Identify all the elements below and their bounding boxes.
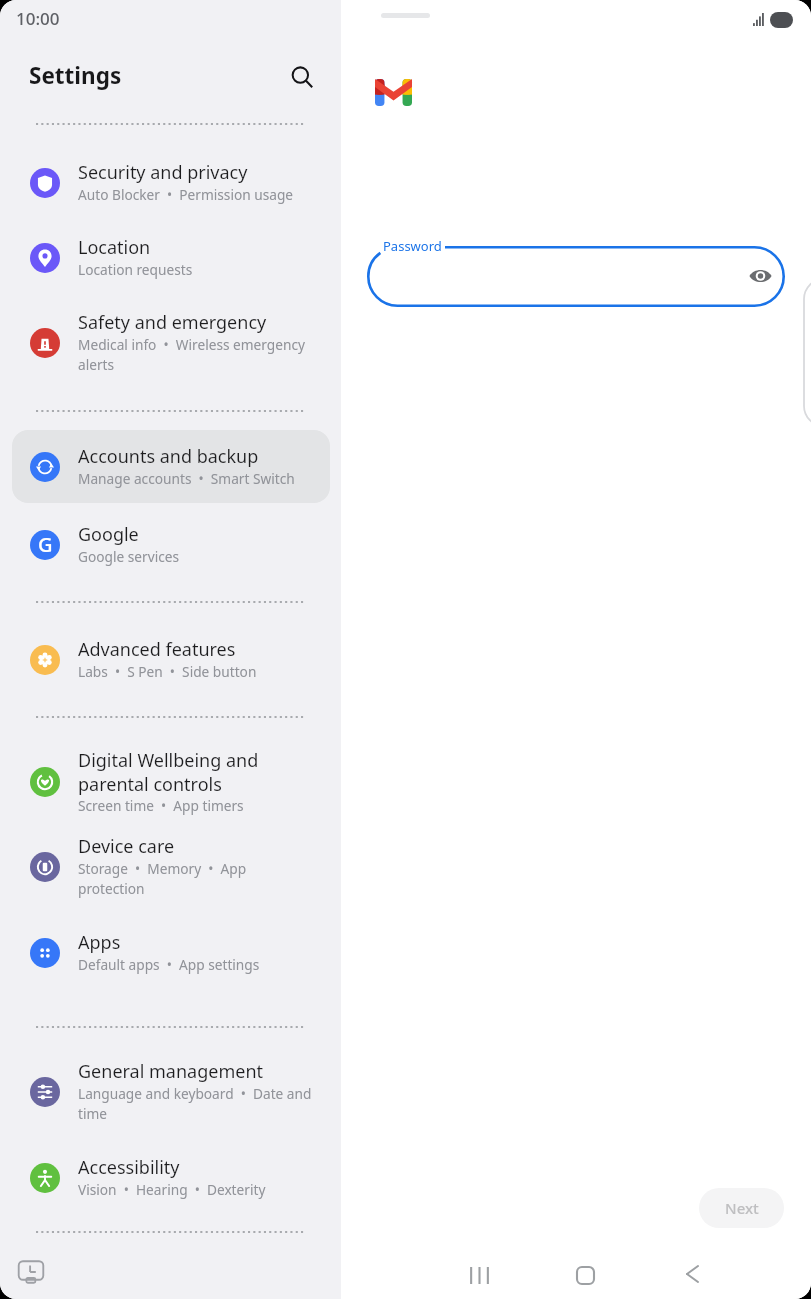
staticText: Accounts and backup: [78, 444, 259, 469]
staticText: Default apps • App settings: [78, 955, 260, 974]
staticText: Device care: [78, 834, 175, 859]
button[interactable]: Next: [699, 1188, 784, 1228]
button[interactable]: Screen time: [15, 1256, 47, 1288]
staticText: Location requests: [78, 260, 193, 279]
staticText: Google services: [78, 547, 180, 566]
button[interactable]: Accessibility: [12, 1141, 330, 1214]
button[interactable]: Location: [12, 221, 330, 294]
staticText: Storage • Memory • App protection: [78, 859, 316, 898]
button[interactable]: Recent apps: [455, 1251, 503, 1299]
staticText: G: [38, 531, 53, 558]
staticText: Location: [78, 235, 151, 260]
button[interactable]: Device care: [12, 821, 330, 913]
button[interactable]: Home: [561, 1251, 609, 1299]
button[interactable]: Security and privacy: [12, 146, 330, 219]
button[interactable]: G: [12, 508, 330, 581]
button[interactable]: Accounts and backup: [12, 430, 330, 503]
button[interactable]: Safety and emergency: [12, 297, 330, 389]
staticText: Screen time • App timers: [78, 796, 244, 815]
staticText: Manage accounts • Smart Switch: [78, 469, 295, 488]
staticText: Language and keyboard • Date and time: [78, 1084, 316, 1123]
button[interactable]: Back: [668, 1250, 716, 1298]
staticText: Digital Wellbeing and parental controls: [78, 748, 316, 796]
staticText: General management: [78, 1059, 264, 1084]
staticText: Labs • S Pen • Side button: [78, 662, 257, 681]
staticText: Advanced features: [78, 637, 236, 662]
staticText: Auto Blocker • Permission usage: [78, 185, 294, 204]
staticText: Safety and emergency: [78, 310, 267, 335]
staticText: Apps: [78, 930, 121, 955]
staticText: Accessibility: [78, 1155, 180, 1180]
button[interactable]: Apps: [12, 916, 330, 989]
staticText: 10:00: [16, 7, 60, 30]
staticText: Vision • Hearing • Dexterity: [78, 1180, 266, 1199]
staticText: Medical info • Wireless emergency alerts: [78, 335, 316, 374]
button[interactable]: Show password: [748, 264, 772, 288]
staticText: Password: [383, 237, 442, 255]
staticText: Security and privacy: [78, 160, 248, 185]
staticText: Google: [78, 522, 139, 547]
staticText: Settings: [29, 60, 122, 91]
button[interactable]: Search: [280, 55, 324, 99]
button[interactable]: Digital Wellbeing and parental controls: [12, 736, 330, 828]
button[interactable]: General management: [12, 1046, 330, 1138]
button[interactable]: Advanced features: [12, 623, 330, 696]
staticText: Next: [725, 1198, 759, 1218]
